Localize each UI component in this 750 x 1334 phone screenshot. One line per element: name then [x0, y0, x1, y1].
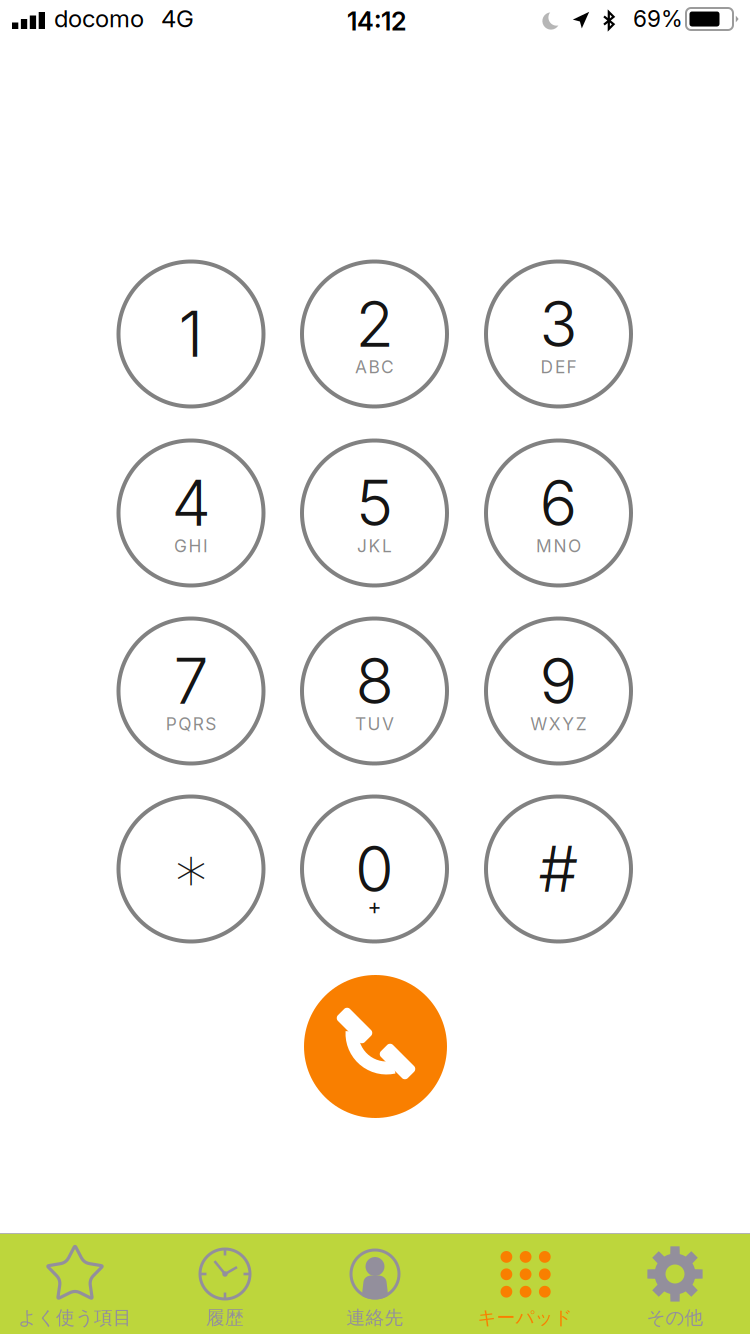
staticText: 9 — [539, 643, 577, 719]
button[interactable]: ∗ — [116, 794, 265, 943]
button[interactable]: 連絡先 — [300, 1234, 450, 1334]
staticText: 1 — [178, 296, 203, 372]
button[interactable]: 8 — [300, 616, 449, 765]
button[interactable]: 7 — [116, 616, 265, 765]
staticText: MNO — [536, 535, 581, 556]
staticText: 0 — [355, 831, 394, 907]
staticText: 8 — [355, 643, 393, 719]
button[interactable]: 1 — [116, 259, 265, 408]
staticText: 7 — [173, 643, 208, 719]
staticText: ABC — [355, 356, 394, 377]
staticText: 2 — [355, 286, 393, 362]
staticText: 5 — [356, 465, 393, 541]
button[interactable]: 3 — [484, 259, 633, 408]
staticText: 4G — [161, 4, 194, 33]
staticText: GHI — [174, 535, 208, 556]
staticText: 4 — [171, 465, 210, 541]
button[interactable]: その他 — [600, 1234, 750, 1334]
staticText: 69% — [633, 5, 683, 32]
staticText: JKL — [357, 535, 392, 556]
staticText: # — [538, 831, 578, 907]
button[interactable]: 2 — [300, 259, 449, 408]
button[interactable]: 5 — [300, 438, 449, 587]
staticText: 連絡先 — [346, 1306, 403, 1329]
button[interactable]: # — [484, 794, 633, 943]
staticText: DEF — [540, 356, 576, 377]
staticText: 6 — [539, 465, 577, 541]
staticText: docomo — [54, 4, 144, 33]
button[interactable]: 6 — [484, 438, 633, 587]
staticText: キーパッド — [477, 1306, 572, 1329]
staticText: よく使う項目 — [18, 1306, 132, 1329]
staticText: ∗ — [171, 832, 210, 905]
button[interactable]: 9 — [484, 616, 633, 765]
staticText: その他 — [646, 1306, 703, 1329]
button[interactable]: 0 — [300, 794, 449, 943]
staticText: 3 — [539, 286, 577, 362]
staticText: PQRS — [166, 713, 216, 734]
button[interactable]: 発信 — [304, 975, 447, 1118]
button[interactable]: 履歴 — [150, 1234, 300, 1334]
staticText: 履歴 — [206, 1306, 244, 1329]
staticText: TUV — [355, 713, 394, 734]
button[interactable]: よく使う項目 — [0, 1234, 150, 1334]
staticText: WXYZ — [530, 713, 587, 734]
staticText: 14:12 — [347, 6, 407, 37]
staticText: + — [367, 894, 381, 920]
button[interactable]: 4 — [116, 438, 265, 587]
button[interactable]: キーパッド — [450, 1234, 600, 1334]
